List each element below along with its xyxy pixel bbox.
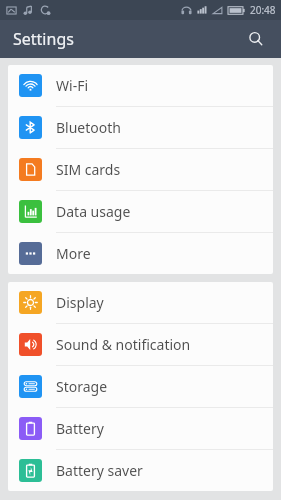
button[interactable]: More	[8, 233, 273, 274]
button[interactable]: Display	[8, 282, 273, 323]
button[interactable]: SIM cards	[8, 149, 273, 190]
staticText: More	[56, 244, 91, 263]
button[interactable]: Battery saver	[8, 450, 273, 491]
staticText: Storage	[56, 377, 108, 396]
staticText: Settings	[13, 28, 74, 50]
button[interactable]: Wi-Fi	[8, 65, 273, 106]
staticText: Battery	[56, 419, 104, 438]
staticText: Bluetooth	[56, 118, 121, 137]
button[interactable]: Storage	[8, 366, 273, 407]
button[interactable]: Bluetooth	[8, 107, 273, 148]
button[interactable]: Battery	[8, 408, 273, 449]
staticText: Display	[56, 293, 104, 312]
staticText: 20:48	[250, 3, 276, 17]
staticText: Battery saver	[56, 461, 143, 480]
staticText: Data usage	[56, 202, 131, 221]
staticText: Sound & notification	[56, 335, 191, 354]
button[interactable]: Sound & notification	[8, 324, 273, 365]
button[interactable]: Data usage	[8, 191, 273, 232]
button[interactable]: Search	[239, 22, 273, 56]
staticText: Wi-Fi	[56, 76, 89, 95]
staticText: SIM cards	[56, 160, 121, 179]
